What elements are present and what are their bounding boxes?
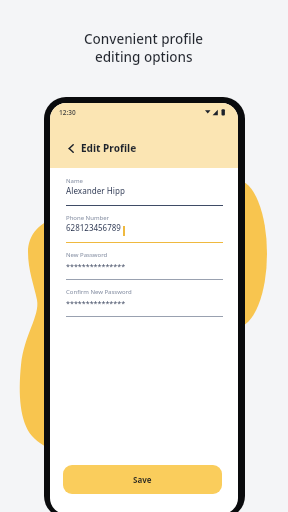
button[interactable]: Edit Profile xyxy=(67,139,187,157)
staticText: Edit Profile xyxy=(81,141,137,155)
staticText: *************** xyxy=(66,261,126,271)
staticText: Name xyxy=(66,177,83,185)
staticText: editing options xyxy=(95,48,193,66)
button[interactable]: Confirm New Password xyxy=(66,288,223,298)
button[interactable]: Name xyxy=(66,177,223,188)
button[interactable]: Save xyxy=(63,465,222,494)
staticText: Save xyxy=(133,474,152,485)
staticText: Convenient profile xyxy=(84,30,204,48)
staticText: *************** xyxy=(66,298,126,308)
staticText: Confirm New Password xyxy=(66,288,132,296)
button[interactable]: New Password xyxy=(66,251,223,261)
staticText: New Password xyxy=(66,251,108,259)
button[interactable]: Phone Number xyxy=(66,214,223,225)
staticText: 628123456789 xyxy=(66,222,121,233)
staticText: 12:30 xyxy=(59,108,76,117)
staticText: Phone Number xyxy=(66,214,110,222)
staticText: Alexander Hipp xyxy=(66,185,125,196)
